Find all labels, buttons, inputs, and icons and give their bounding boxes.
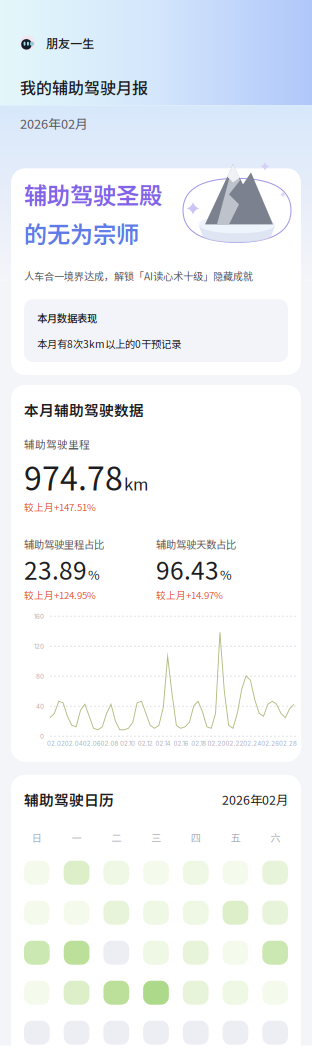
button[interactable]: 朋友一生 [20, 34, 94, 52]
staticText: 二 [111, 830, 121, 845]
button[interactable]: Day [64, 981, 89, 1005]
button[interactable]: Day [64, 1021, 89, 1045]
staticText: 02.08 [100, 740, 118, 747]
staticText: 02.28 [279, 740, 297, 747]
button[interactable]: Day [103, 981, 129, 1005]
button[interactable]: Day [24, 901, 50, 925]
staticText: 辅助驾驶日历 [24, 789, 114, 810]
staticText: 02.10 [120, 740, 135, 747]
button[interactable]: Day [262, 981, 288, 1005]
staticText: 较上月+124.95% [24, 588, 96, 602]
button[interactable]: Day [103, 1021, 129, 1045]
button[interactable]: Day [64, 941, 89, 965]
staticText: 较上月+147.51% [24, 500, 96, 514]
staticText: 02.16 [173, 740, 188, 747]
button[interactable]: Day [103, 901, 129, 925]
button[interactable]: Day [24, 941, 50, 965]
staticText: 02.20 [208, 740, 226, 747]
button[interactable]: Day [223, 901, 248, 925]
button[interactable]: Day [143, 861, 169, 885]
staticText: 120 [34, 643, 44, 650]
staticText: 较上月+14.97% [156, 588, 223, 602]
staticText: % [220, 565, 232, 583]
button[interactable]: Day [262, 1021, 288, 1045]
button[interactable]: Day [223, 981, 248, 1005]
button[interactable]: Day [262, 941, 288, 965]
button[interactable]: Day [262, 861, 288, 885]
staticText: 本月数据表现 [37, 310, 97, 325]
button[interactable]: Day [64, 861, 89, 885]
staticText: 辅助驾驶天数占比 [156, 537, 236, 552]
staticText: 四 [191, 830, 201, 845]
staticText: 02.18 [191, 740, 206, 747]
staticText: 五 [230, 830, 240, 845]
staticText: 02.02 [47, 740, 65, 747]
staticText: 0 [40, 733, 44, 740]
staticText: 六 [270, 830, 280, 845]
button[interactable]: Day [64, 901, 89, 925]
staticText: 一 [72, 830, 82, 845]
staticText: 辅助驾驶里程 [24, 436, 90, 451]
staticText: 02.26 [261, 740, 279, 747]
staticText: 02.24 [243, 740, 261, 747]
button[interactable]: Day [223, 861, 248, 885]
staticText: 本月辅助驾驶数据 [24, 399, 144, 420]
staticText: % [88, 565, 100, 583]
button[interactable]: Day [143, 981, 169, 1005]
staticText: 辅助驾驶里程占比 [24, 537, 104, 552]
staticText: 我的辅助驾驶月报 [20, 76, 148, 99]
staticText: 02.14 [156, 740, 171, 747]
staticText: 辅助驾驶圣殿 [24, 177, 162, 211]
staticText: 日 [32, 830, 42, 845]
staticText: km [124, 471, 148, 495]
button[interactable]: Day [143, 901, 169, 925]
staticText: 本月有8次3km以上的0干预记录 [37, 336, 181, 351]
staticText: 2026年02月 [222, 790, 288, 808]
staticText: 02.04 [65, 740, 83, 747]
button[interactable]: Day [183, 901, 209, 925]
staticText: 三 [151, 830, 161, 845]
staticText: 160 [34, 613, 44, 620]
button[interactable]: Day [24, 981, 50, 1005]
staticText: 朋友一生 [46, 34, 94, 52]
button[interactable]: Day [24, 1021, 50, 1045]
staticText: 02.22 [225, 740, 243, 747]
staticText: 02.06 [83, 740, 101, 747]
button[interactable]: Day [24, 861, 50, 885]
button[interactable]: Day [223, 941, 248, 965]
button[interactable]: Day [183, 1021, 209, 1045]
staticText: 2026年02月 [20, 114, 88, 132]
staticText: 96.43 [156, 552, 219, 587]
button[interactable]: Day [183, 941, 209, 965]
staticText: 40 [36, 703, 44, 710]
staticText: 23.89 [24, 552, 87, 587]
button[interactable]: Day [103, 941, 129, 965]
button[interactable]: Day [103, 861, 129, 885]
staticText: 人车合一境界达成，解锁「AI读心术十级」隐藏成就 [24, 269, 253, 283]
staticText: 974.78 [24, 453, 123, 500]
staticText: 80 [36, 673, 44, 680]
button[interactable]: Day [143, 941, 169, 965]
button[interactable]: Day [183, 981, 209, 1005]
button[interactable]: Day [143, 1021, 169, 1045]
button[interactable]: Day [223, 1021, 248, 1045]
staticText: 02.12 [138, 740, 153, 747]
staticText: 的无为宗师 [24, 216, 139, 250]
button[interactable]: Day [183, 861, 209, 885]
button[interactable]: Day [262, 901, 288, 925]
